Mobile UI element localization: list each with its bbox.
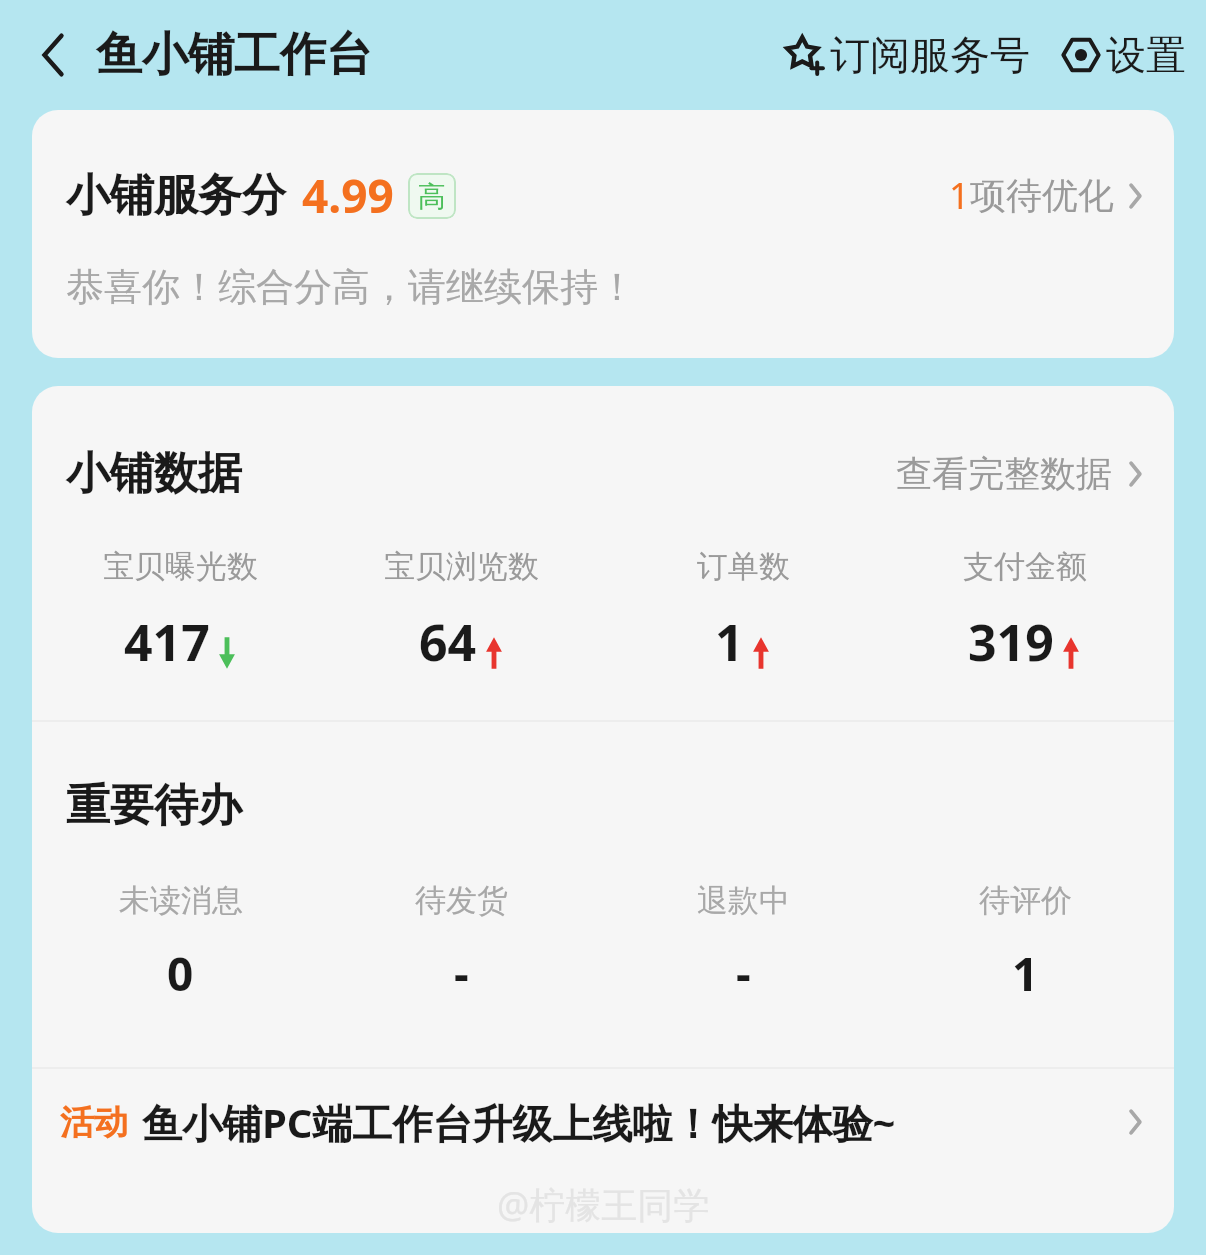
button[interactable]: 设置 (1056, 24, 1190, 86)
button[interactable]: 支付金额 (884, 547, 1166, 676)
staticText: 鱼小铺PC端工作台升级上线啦！快来体验~ (142, 1095, 896, 1150)
staticText: - (454, 942, 469, 1005)
button[interactable]: 未读消息 (40, 881, 321, 1005)
button[interactable]: 待发货 (321, 881, 602, 1005)
staticText: 小铺数据 (66, 446, 242, 501)
staticText: 1 (949, 171, 970, 220)
staticText: 1 (715, 608, 744, 676)
button[interactable]: 小铺服务分 (32, 110, 1174, 358)
staticText: 查看完整数据 (896, 451, 1112, 496)
staticText: 订单数 (697, 547, 790, 586)
staticText: 项待优化 (970, 173, 1114, 218)
button[interactable]: Back (22, 23, 86, 87)
button[interactable]: 订单数 (602, 547, 884, 676)
staticText: 重要待办 (66, 778, 242, 833)
button[interactable]: 活动 (32, 1069, 1174, 1175)
staticText: 支付金额 (963, 547, 1087, 586)
button[interactable]: 宝贝浏览数 (321, 547, 602, 676)
staticText: 319 (968, 608, 1054, 676)
staticText: 64 (419, 608, 477, 676)
staticText: 4.99 (302, 164, 394, 227)
button[interactable]: 宝贝曝光数 (40, 547, 321, 676)
staticText: 退款中 (697, 881, 790, 920)
staticText: 1 (1012, 942, 1039, 1005)
staticText: 未读消息 (119, 881, 243, 920)
button[interactable]: 待评价 (884, 881, 1166, 1005)
staticText: 恭喜你！综合分高，请继续保持！ (66, 263, 636, 311)
staticText: 0 (167, 942, 194, 1005)
staticText: 小铺服务分 (66, 168, 286, 223)
button[interactable]: 查看完整数据 (896, 451, 1146, 496)
staticText: 高 (418, 179, 446, 214)
staticText: 宝贝曝光数 (103, 547, 258, 586)
button[interactable]: 订阅服务号 (778, 24, 1034, 86)
staticText: 宝贝浏览数 (384, 547, 539, 586)
staticText: 设置 (1106, 30, 1186, 80)
staticText: 417 (124, 608, 210, 676)
staticText: @柠檬王同学 (497, 1180, 710, 1229)
staticText: 待发货 (415, 881, 508, 920)
staticText: 鱼小铺工作台 (96, 26, 372, 84)
staticText: 活动 (60, 1101, 128, 1144)
staticText: 订阅服务号 (830, 30, 1030, 80)
staticText: 待评价 (979, 881, 1072, 920)
button[interactable]: 退款中 (602, 881, 884, 1005)
staticText: - (736, 942, 751, 1005)
